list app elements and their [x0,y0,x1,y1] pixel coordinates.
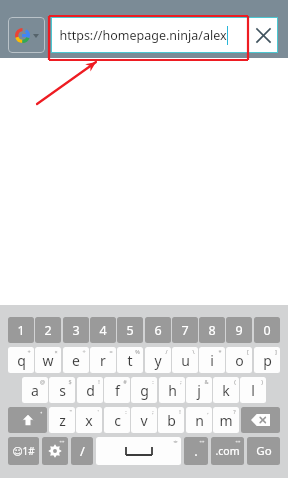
staticText: 0 [263,322,271,339]
staticText: n [195,411,204,430]
staticText: x [85,411,93,430]
button[interactable]: y [145,347,171,373]
staticText: .com [215,444,240,458]
staticText: u [181,351,190,370]
staticText: / [80,442,85,460]
staticText: ] [275,348,277,355]
button[interactable]: / [71,437,93,465]
button[interactable]: r [90,347,116,373]
staticText: @ [40,378,45,385]
button[interactable]: ☺1# [8,437,39,465]
staticText: % [135,348,140,355]
button[interactable]: 6 [145,317,171,343]
button[interactable]: Space [96,437,181,465]
staticText: 4 [99,322,107,339]
staticText: & [204,378,209,385]
staticText: ••• [235,439,241,445]
staticText: 2 [44,322,52,339]
button[interactable]: Backspace [241,407,280,433]
staticText: 8 [208,322,216,339]
staticText: " [69,408,72,415]
staticText: * [218,348,222,355]
button[interactable]: i [199,347,225,373]
staticText: 5 [126,322,134,339]
button[interactable]: m [213,407,239,433]
staticText: t [127,351,133,370]
button[interactable]: h [159,377,185,403]
button[interactable]: 4 [90,317,116,343]
button[interactable]: 3 [63,317,89,343]
button[interactable]: d [77,377,103,403]
staticText: j [197,381,201,400]
staticText: p [263,351,272,370]
staticText: z [59,411,66,430]
staticText: = [109,348,113,355]
staticText: . [194,442,198,460]
button[interactable]: Settings [42,437,68,465]
button[interactable]: 9 [226,317,252,343]
button[interactable]: Search engine: Google [8,17,45,53]
button[interactable]: w [35,347,61,373]
button[interactable]: https://homepage.ninja/alex [51,17,247,53]
button[interactable]: 2 [35,317,61,343]
staticText: ( [234,378,236,385]
staticText: ! [179,408,181,415]
staticText: ) [261,378,263,385]
button[interactable]: f [104,377,130,403]
staticText: i [210,351,214,370]
staticText: c [114,411,121,430]
staticText: × [54,348,58,355]
staticText: f [115,381,120,400]
button[interactable]: s [49,377,75,403]
staticText: q [17,351,26,370]
button[interactable]: l [240,377,266,403]
staticText: g [140,381,149,400]
button[interactable]: a [22,377,48,403]
staticText: / [165,348,168,355]
staticText: # [123,378,127,385]
staticText: \ [192,348,195,355]
staticText: v [140,411,148,430]
button[interactable]: z [49,407,75,433]
button[interactable]: v [131,407,157,433]
button[interactable]: g [131,377,157,403]
button[interactable]: q [8,347,34,373]
button[interactable]: Shift [8,407,47,433]
staticText: • [40,409,43,417]
button[interactable]: . [184,437,208,465]
button[interactable]: 0 [254,317,280,343]
staticText: ◂▸ [173,439,178,444]
button[interactable]: Clear [248,17,278,53]
staticText: ••• [199,439,205,445]
button[interactable]: 7 [172,317,198,343]
staticText: ; [152,408,154,415]
staticText: y [154,351,162,370]
button[interactable]: .com [211,437,244,465]
button[interactable]: e [63,347,89,373]
staticText: s [59,381,66,400]
button[interactable]: 5 [117,317,143,343]
staticText: k [222,381,230,400]
button[interactable]: 8 [199,317,225,343]
button[interactable]: t [117,347,143,373]
staticText: ; [180,378,182,385]
button[interactable]: u [172,347,198,373]
staticText: r [100,351,106,370]
button[interactable]: b [158,407,184,433]
staticText: ••• [59,439,65,445]
staticText: [ [247,348,249,355]
staticText: w [42,351,54,370]
button[interactable]: j [186,377,212,403]
button[interactable]: o [226,347,252,373]
button[interactable]: x [76,407,102,433]
button[interactable]: k [213,377,239,403]
button[interactable]: p [254,347,280,373]
button[interactable]: Go [247,437,280,465]
button[interactable]: n [186,407,212,433]
staticText: Go [256,443,272,459]
button[interactable]: c [104,407,130,433]
staticText: 1 [17,322,25,339]
staticText: : [125,408,127,415]
button[interactable]: 1 [8,317,34,343]
staticText: d [86,381,95,400]
